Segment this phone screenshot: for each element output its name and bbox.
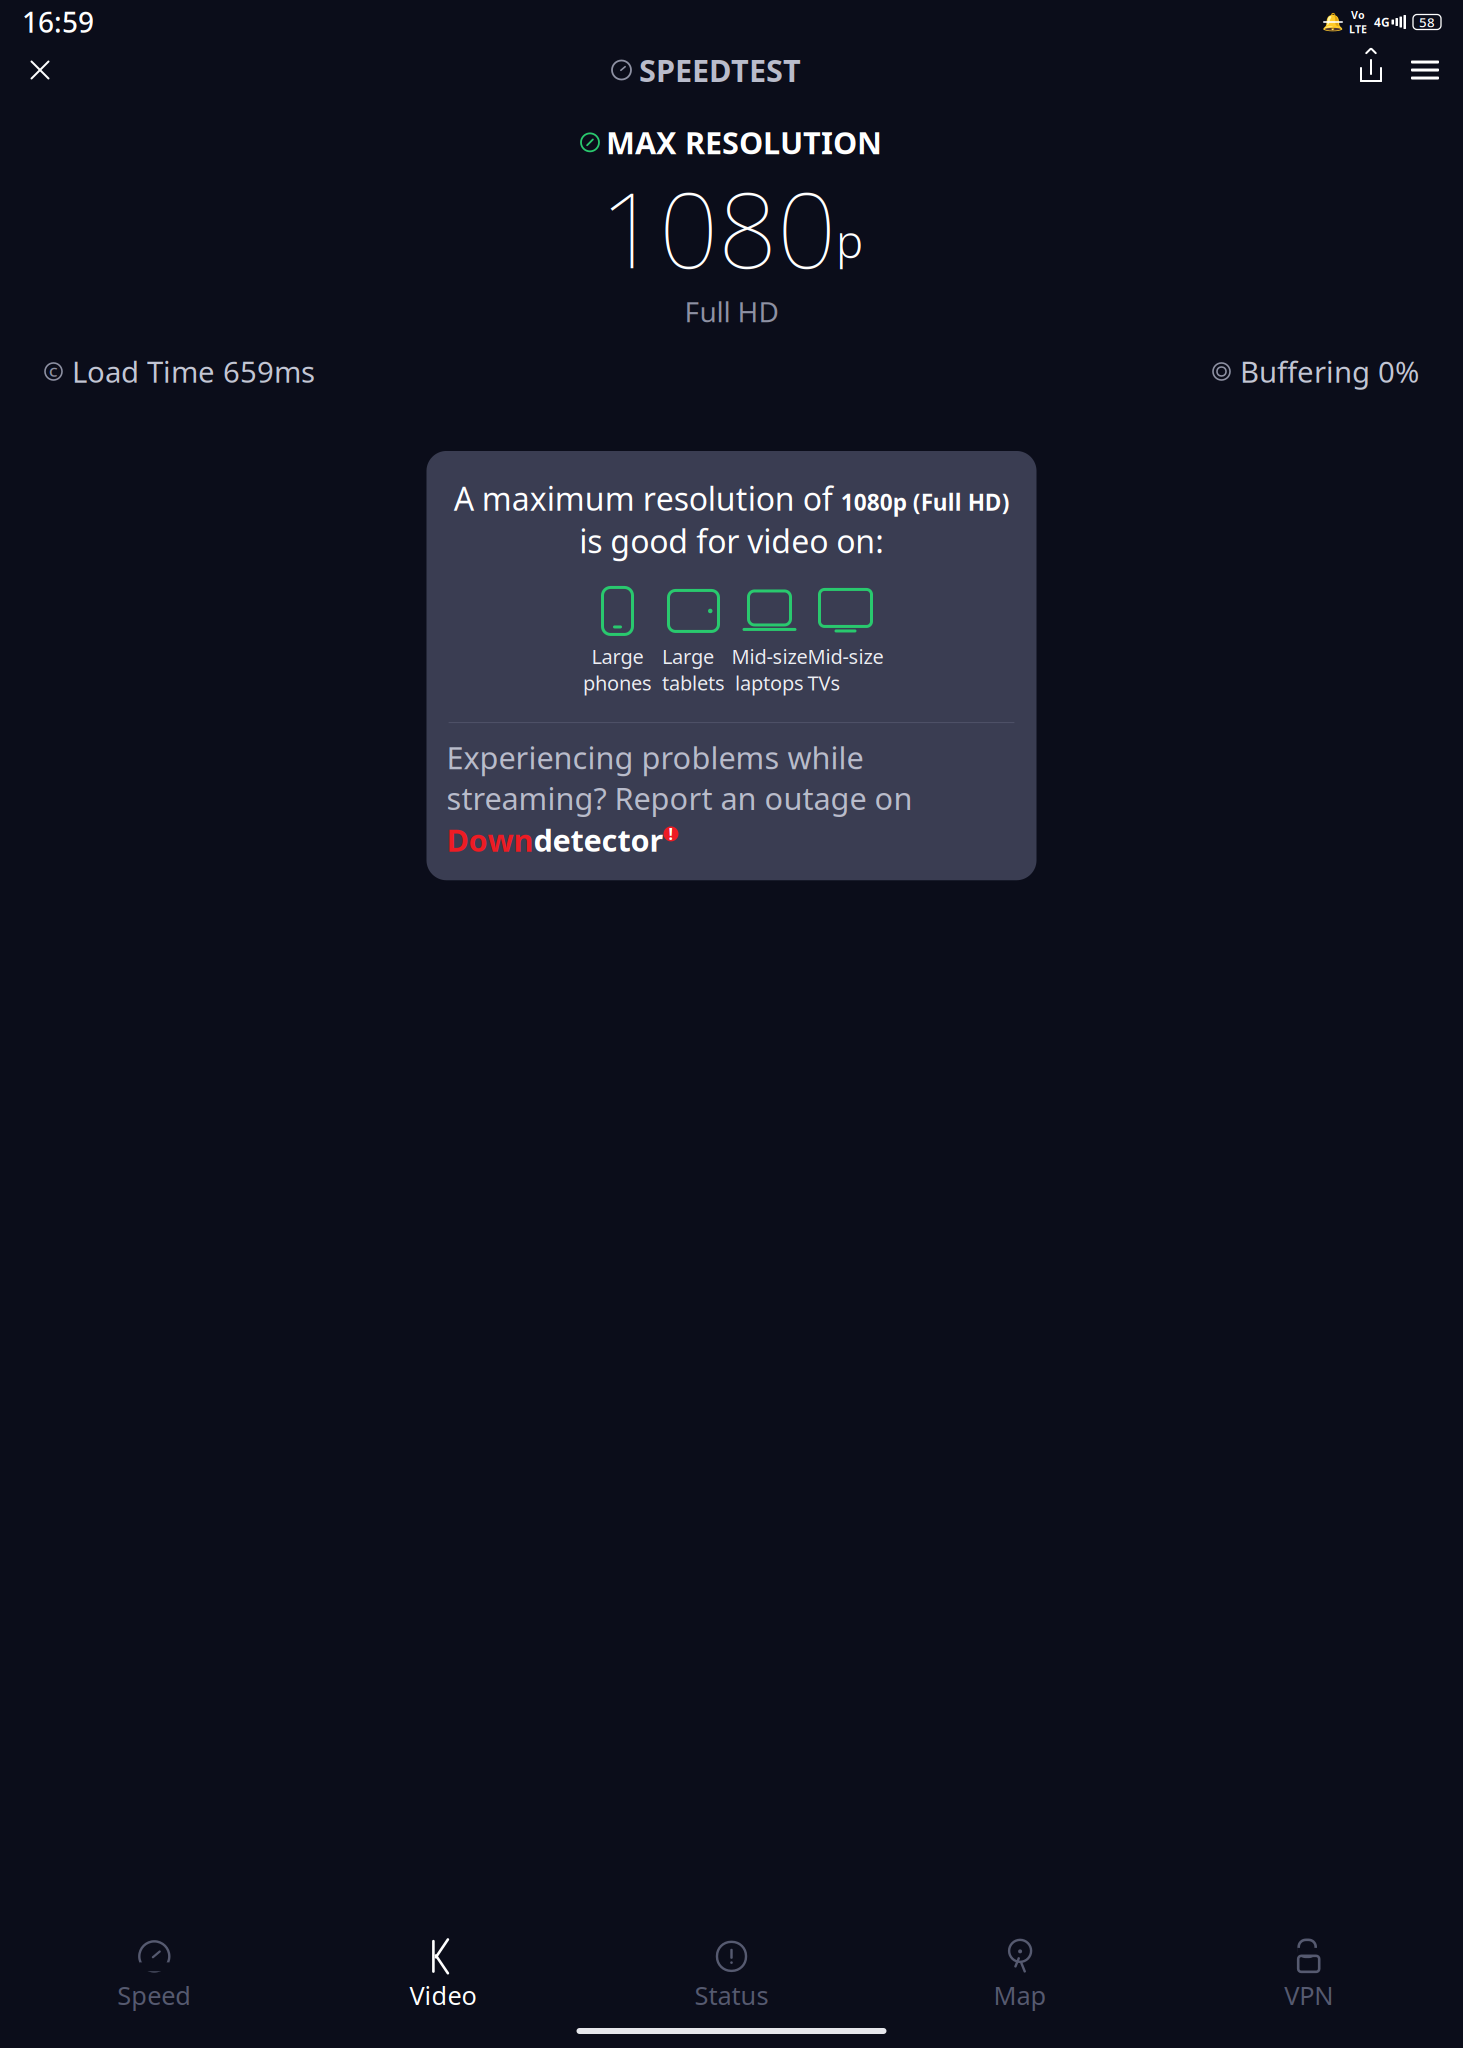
- staticText: LTE: [1349, 22, 1367, 36]
- staticText: SPEEDTEST: [639, 50, 801, 90]
- staticText: C: [49, 363, 58, 380]
- button[interactable]: Menu: [1405, 48, 1445, 92]
- staticText: Load Time 659ms: [72, 352, 315, 391]
- staticText: 16:59: [22, 3, 94, 41]
- staticText: Mid-size TVs: [807, 643, 883, 696]
- staticText: 1080: [600, 159, 836, 297]
- staticText: Full HD: [684, 293, 778, 330]
- button[interactable]: Video: [299, 1932, 587, 2018]
- staticText: Vo: [1351, 8, 1365, 22]
- staticText: Buffering 0%: [1240, 352, 1419, 391]
- staticText: p: [836, 211, 863, 271]
- staticText: !: [668, 823, 673, 844]
- staticText: VPN: [1284, 1978, 1333, 2012]
- button[interactable]: VPN: [1164, 1932, 1453, 2018]
- staticText: Large: [591, 643, 643, 670]
- button[interactable]: Status: [587, 1932, 876, 2018]
- button[interactable]: Speed: [10, 1932, 299, 2018]
- staticText: Down: [446, 819, 533, 860]
- button[interactable]: Map: [876, 1932, 1164, 2018]
- staticText: laptops: [735, 669, 804, 696]
- staticText: MAX RESOLUTION: [606, 122, 882, 163]
- staticText: Status: [694, 1978, 768, 2012]
- button[interactable]: Report an outage on Downdetector: [426, 723, 1036, 880]
- staticText: Large tablets: [662, 643, 725, 696]
- staticText: Experiencing problems while streaming? R…: [446, 737, 920, 818]
- button[interactable]: Close: [18, 48, 62, 92]
- staticText: detector: [533, 819, 663, 860]
- staticText: Speed: [117, 1978, 191, 2012]
- staticText: A maximum resolution of 1080p (Full HD) …: [453, 477, 1009, 562]
- staticText: 🔔: [1322, 12, 1344, 32]
- button[interactable]: Share: [1351, 48, 1391, 92]
- staticText: Mid-size: [731, 643, 807, 670]
- staticText: phones: [583, 669, 652, 696]
- staticText: 4G: [1374, 14, 1390, 30]
- staticText: 58: [1419, 13, 1435, 31]
- staticText: Map: [994, 1978, 1047, 2012]
- staticText: Video: [409, 1978, 476, 2012]
